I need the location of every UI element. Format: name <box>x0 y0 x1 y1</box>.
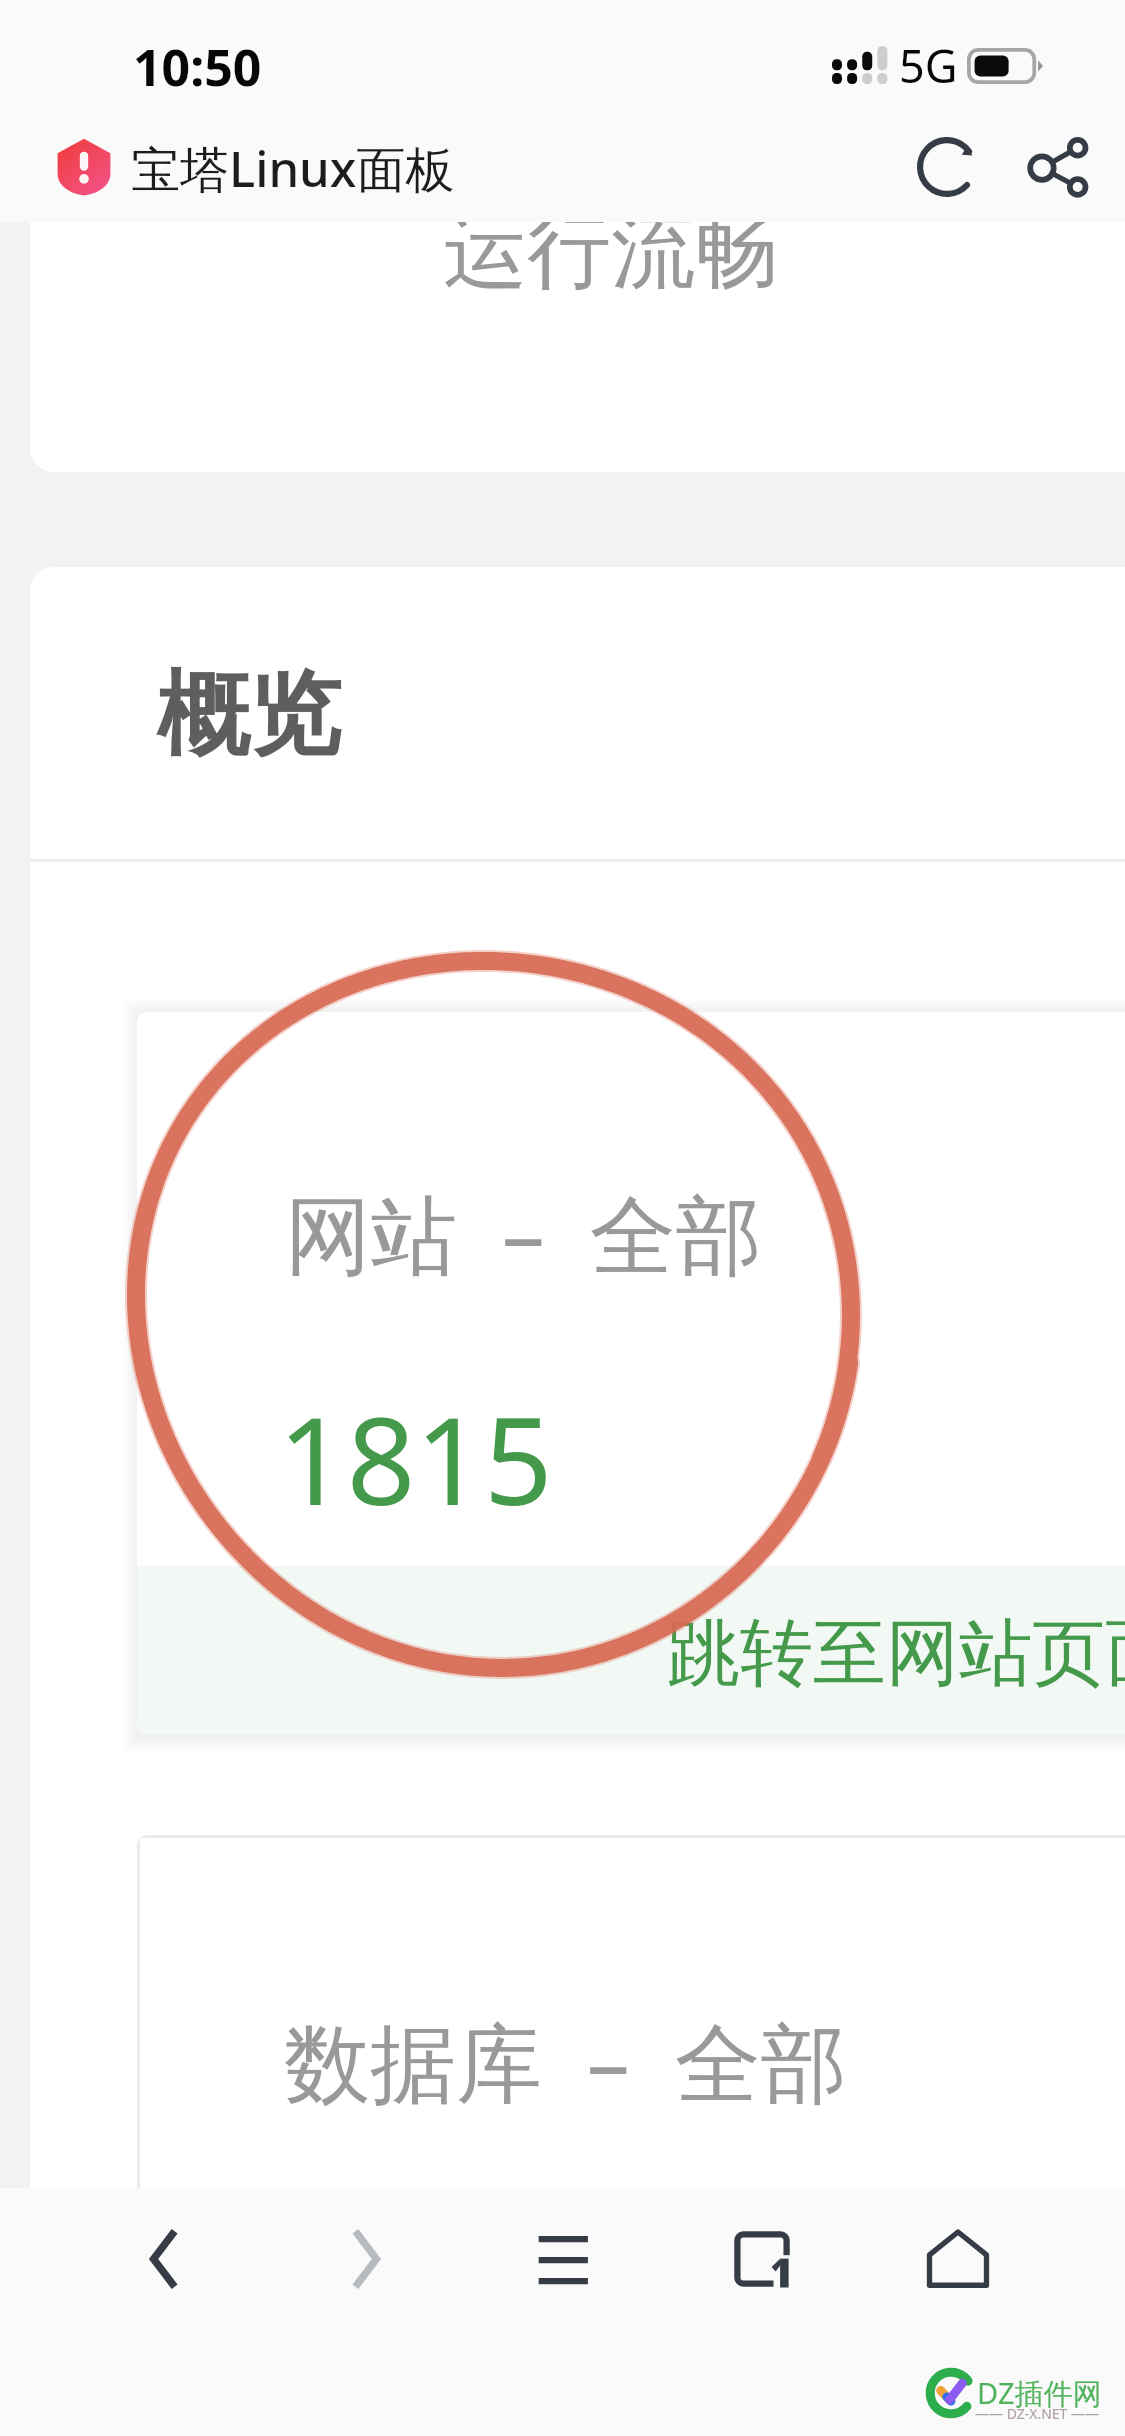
staticText: 运行流畅 <box>443 222 779 304</box>
staticText: 5G <box>899 35 958 96</box>
staticText: 概览 <box>157 657 341 773</box>
staticText: —— DZ-X.NET —— <box>975 2404 1100 2423</box>
button[interactable]: Back <box>97 2191 233 2327</box>
staticText: 宝塔Linux面板 <box>131 135 455 202</box>
button[interactable]: Refresh <box>898 118 996 216</box>
button[interactable]: 运行流畅 <box>30 222 1125 472</box>
staticText: 10:50 <box>133 33 262 101</box>
staticText: 1815 <box>278 1377 553 1540</box>
button[interactable]: 数据库 – 全部 <box>137 1835 1125 2188</box>
staticText: 跳转至网站页面 <box>667 1608 1125 1700</box>
staticText: 网站 – 全部 <box>285 1174 762 1291</box>
staticText: DZ插件网 <box>977 2373 1102 2413</box>
button[interactable]: Home <box>890 2191 1026 2327</box>
button[interactable]: Share <box>1008 118 1106 216</box>
button[interactable]: Menu <box>494 2191 630 2327</box>
button[interactable]: 网站 – 全部 <box>137 1012 1125 1734</box>
button[interactable]: Forward <box>297 2191 433 2327</box>
staticText: 数据库 – 全部 <box>284 2002 847 2119</box>
button[interactable]: Tabs <box>694 2191 830 2327</box>
